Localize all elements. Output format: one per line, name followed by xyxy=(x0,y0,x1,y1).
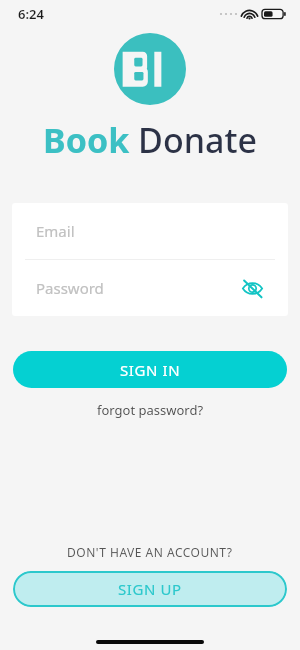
staticText: Book Donate xyxy=(43,117,257,163)
staticText: DON'T HAVE AN ACCOUNT? xyxy=(67,544,233,560)
staticText: SIGN UP xyxy=(118,579,182,599)
button[interactable]: Email xyxy=(12,203,288,259)
button[interactable]: SIGN UP xyxy=(13,571,287,607)
staticText: 6:24 xyxy=(18,5,44,23)
button[interactable]: SIGN IN xyxy=(13,351,287,388)
staticText: SIGN IN xyxy=(120,360,181,380)
staticText: Email xyxy=(36,221,75,241)
button[interactable]: Show password xyxy=(236,272,268,304)
button[interactable]: forgot password? xyxy=(89,397,212,423)
button[interactable]: Password xyxy=(12,260,288,316)
staticText: Password xyxy=(36,278,104,298)
staticText: forgot password? xyxy=(97,401,204,419)
